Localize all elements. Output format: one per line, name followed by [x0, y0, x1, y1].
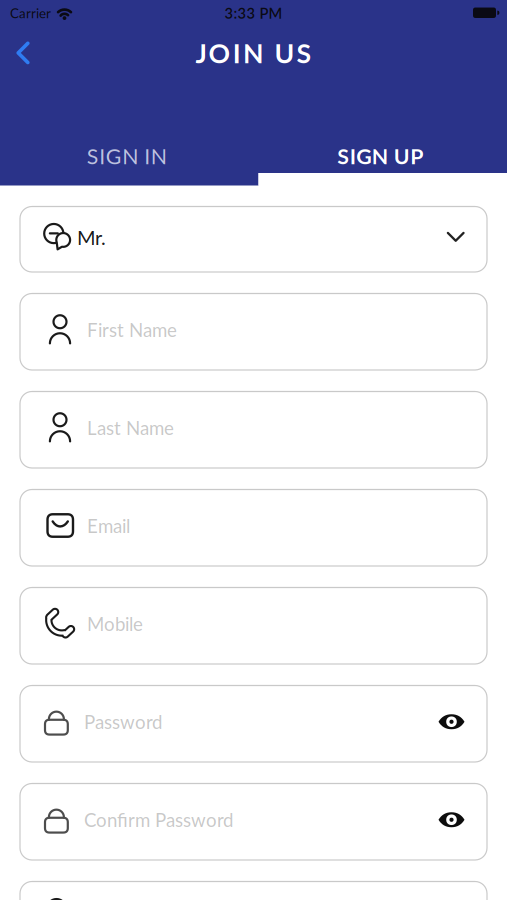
staticText: S: [297, 37, 312, 69]
staticText: Password: [84, 711, 162, 733]
button[interactable]: Password: [20, 685, 487, 762]
staticText: SIGN UP: [337, 143, 423, 168]
button[interactable]: Email: [20, 489, 487, 566]
button[interactable]: Mr.: [20, 206, 487, 272]
button[interactable]: Mobile: [20, 587, 487, 664]
staticText: J: [195, 37, 206, 69]
button[interactable]: [0, 41, 30, 64]
staticText: 3:33 PM: [224, 4, 282, 22]
staticText: Carrier: [10, 5, 51, 21]
staticText: N: [243, 37, 264, 69]
staticText: SIGN IN: [87, 143, 167, 168]
staticText: Mr.: [77, 225, 106, 249]
button[interactable]: First Name: [20, 293, 487, 370]
button[interactable]: [20, 881, 487, 900]
staticText: I: [233, 37, 241, 69]
button[interactable]: SIGN IN: [0, 143, 253, 168]
staticText: U: [274, 37, 294, 69]
staticText: Confirm Password: [84, 809, 233, 831]
staticText: Email: [87, 515, 130, 537]
staticText: O: [209, 37, 231, 69]
staticText: Last Name: [87, 417, 174, 439]
staticText: First Name: [87, 319, 177, 341]
staticText: Mobile: [87, 613, 143, 635]
button[interactable]: Confirm Password: [20, 783, 487, 860]
button[interactable]: Last Name: [20, 391, 487, 468]
button[interactable]: SIGN UP: [253, 143, 507, 168]
